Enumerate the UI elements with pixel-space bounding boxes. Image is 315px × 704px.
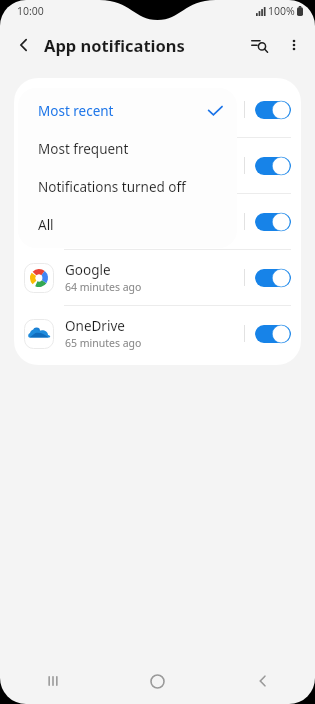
- button[interactable]: Notifications turned off: [18, 168, 237, 206]
- button[interactable]: All: [18, 206, 237, 244]
- staticText: 65 minutes ago: [65, 336, 142, 350]
- button[interactable]: Calendar: [14, 138, 301, 193]
- staticText: Notifications turned off: [38, 178, 223, 196]
- button[interactable]: Toggle Google notifications: [255, 266, 291, 290]
- staticText: App notifications: [44, 34, 185, 56]
- button[interactable]: Toggle Messages notifications: [255, 98, 291, 122]
- button[interactable]: Most recent: [18, 92, 237, 130]
- staticText: Google: [65, 261, 111, 279]
- staticText: Messages: [65, 93, 128, 111]
- button[interactable]: Recents: [0, 658, 105, 704]
- button[interactable]: OneDrive: [14, 306, 301, 361]
- button[interactable]: Home: [105, 658, 210, 704]
- staticText: 28 minutes ago: [65, 168, 142, 182]
- button[interactable]: Search: [243, 28, 277, 62]
- staticText: 100%: [268, 4, 295, 18]
- staticText: 10:00: [17, 4, 44, 18]
- staticText: 64 minutes ago: [65, 280, 142, 294]
- button[interactable]: Navigate up: [6, 27, 42, 63]
- button[interactable]: Google: [14, 250, 301, 305]
- staticText: Calendar: [65, 149, 122, 167]
- button[interactable]: Toggle Calendar notifications: [255, 154, 291, 178]
- button[interactable]: Messages: [14, 82, 301, 137]
- button[interactable]: AppCloud: [14, 194, 301, 249]
- button[interactable]: Toggle OneDrive notifications: [255, 322, 291, 346]
- button[interactable]: Most frequent: [18, 130, 237, 168]
- staticText: OneDrive: [65, 317, 125, 335]
- staticText: Most recent: [38, 102, 207, 120]
- button[interactable]: More options: [277, 28, 311, 62]
- button[interactable]: Toggle AppCloud notifications: [255, 210, 291, 234]
- button[interactable]: Back: [210, 658, 315, 704]
- staticText: 9 minutes ago: [65, 112, 136, 126]
- staticText: Most frequent: [38, 140, 223, 158]
- staticText: All: [38, 216, 223, 234]
